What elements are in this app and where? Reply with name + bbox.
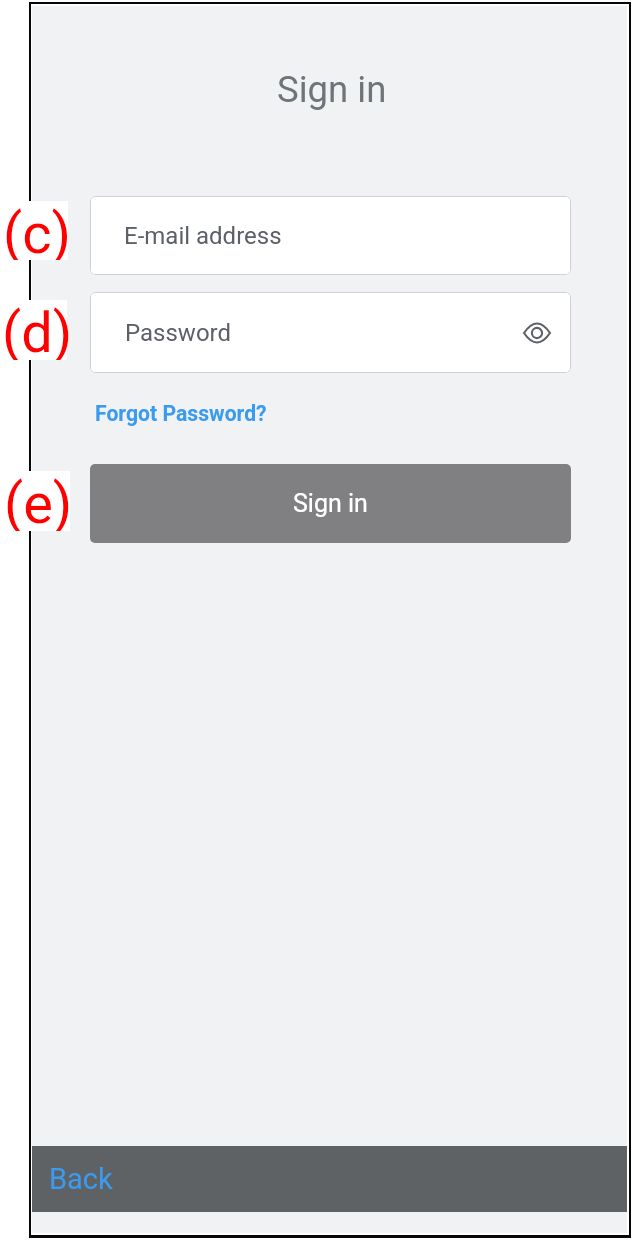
button[interactable]: Show password [515, 311, 559, 355]
button[interactable]: E-mail address [90, 196, 571, 275]
button[interactable]: Password [90, 292, 571, 373]
staticText: (c) [3, 201, 71, 260]
staticText: (d) [2, 300, 69, 360]
staticText: E-mail address [124, 222, 282, 250]
button[interactable]: Sign in [90, 464, 571, 543]
staticText: Forgot Password? [95, 401, 267, 426]
staticText: Back [49, 1162, 113, 1196]
staticText: Sign in [277, 68, 387, 111]
staticText: Password [125, 319, 232, 347]
staticText: (e) [4, 471, 73, 531]
staticText: Sign in [293, 489, 368, 518]
button[interactable]: Back [49, 1162, 113, 1196]
button[interactable]: Forgot Password? [95, 401, 267, 426]
